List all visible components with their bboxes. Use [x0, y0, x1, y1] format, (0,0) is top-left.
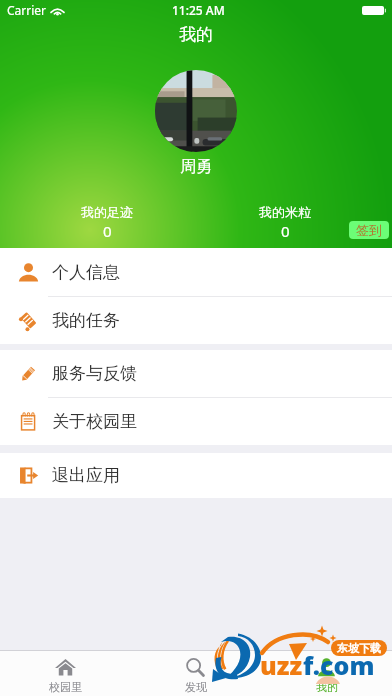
staticText: 我的任务 [52, 310, 120, 331]
staticText: 0 [281, 221, 290, 241]
staticText: 校园里 [49, 680, 82, 694]
staticText: 退出应用 [52, 465, 120, 486]
button[interactable]: 关于校园里 [0, 398, 392, 445]
staticText: 关于校园里 [52, 411, 137, 432]
button[interactable]: 服务与反馈 [0, 350, 392, 397]
button[interactable]: 签到 [349, 221, 389, 239]
staticText: uzz [260, 648, 303, 682]
staticText: 东坡下载 [337, 641, 381, 655]
staticText: 0 [103, 221, 112, 241]
button[interactable]: 我的 [261, 651, 392, 694]
staticText: 发现 [185, 680, 207, 694]
staticText: 我的 [316, 680, 338, 694]
button[interactable]: 校园里 [0, 651, 130, 694]
button[interactable]: 我的足迹 [18, 204, 196, 241]
staticText: 我的足迹 [81, 204, 133, 220]
staticText: 个人信息 [52, 262, 120, 283]
button[interactable]: 退出应用 [0, 453, 392, 498]
staticText: f.com [303, 648, 375, 682]
button[interactable]: 发现 [130, 651, 261, 694]
staticText: Carrier [7, 2, 47, 18]
button[interactable]: Profile photo [155, 70, 237, 152]
button[interactable]: 个人信息 [0, 248, 392, 296]
button[interactable]: 我的任务 [0, 297, 392, 344]
staticText: 签到 [356, 222, 382, 238]
staticText: 我的 [179, 24, 213, 45]
button[interactable]: 我的米粒 [196, 204, 374, 241]
staticText: 我的米粒 [259, 204, 311, 220]
staticText: 服务与反馈 [52, 363, 137, 384]
staticText: 11:25 AM [172, 2, 225, 18]
staticText: 周勇 [180, 157, 212, 177]
